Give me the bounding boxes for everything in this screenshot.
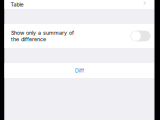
staticText: Diff [75, 67, 84, 74]
button[interactable]: Diff [4, 63, 154, 78]
staticText: Show only a summary of the difference [11, 29, 74, 42]
button[interactable]: Table [4, 0, 154, 9]
button[interactable]: Show only a summary of the difference [4, 24, 154, 48]
staticText: Table [10, 1, 23, 8]
